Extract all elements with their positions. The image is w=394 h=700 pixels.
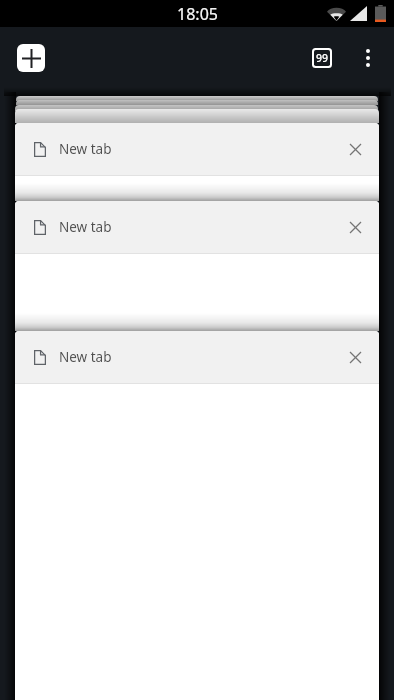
- staticText: 18:05: [177, 3, 218, 25]
- button[interactable]: New tab: [15, 123, 379, 201]
- button[interactable]: New tab: [15, 331, 379, 700]
- button[interactable]: Switch tabs: [305, 41, 339, 75]
- staticText: New tab: [59, 140, 112, 158]
- button[interactable]: New tab: [15, 201, 379, 331]
- button[interactable]: Close tab: [340, 342, 370, 372]
- button[interactable]: Close tab: [340, 134, 370, 164]
- staticText: New tab: [59, 218, 112, 236]
- button[interactable]: Close tab: [340, 212, 370, 242]
- button[interactable]: New tab: [17, 44, 45, 72]
- button[interactable]: More options: [351, 41, 385, 75]
- staticText: New tab: [59, 348, 112, 366]
- staticText: 99: [316, 51, 329, 65]
